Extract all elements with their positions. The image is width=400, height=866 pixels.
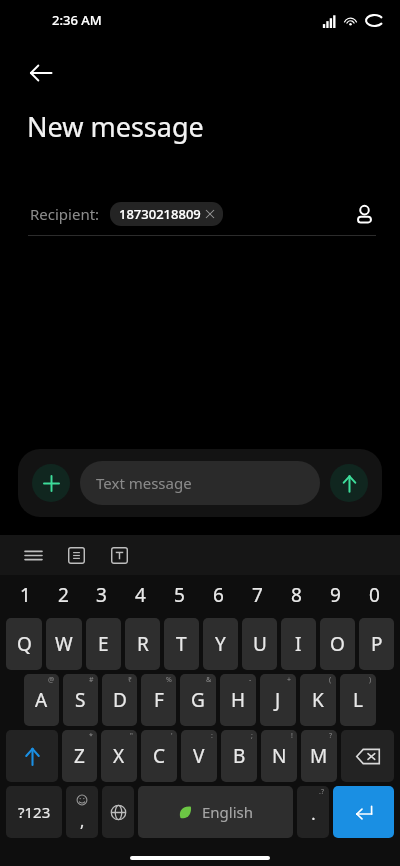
button[interactable]: T xyxy=(164,618,199,670)
button[interactable]: 6 xyxy=(199,575,238,615)
button[interactable]: Emoji and comma xyxy=(66,786,98,838)
button[interactable]: ?123 xyxy=(6,786,62,838)
staticText: Z xyxy=(74,743,85,769)
staticText: Q xyxy=(17,631,32,657)
staticText: 0 xyxy=(369,582,380,608)
button[interactable]: 0 xyxy=(355,575,394,615)
button[interactable]: R xyxy=(125,618,160,670)
staticText: @ xyxy=(48,675,55,685)
staticText: L xyxy=(353,687,363,713)
button[interactable]: ; xyxy=(221,730,257,782)
staticText: Y xyxy=(215,631,226,657)
staticText: .? xyxy=(319,787,324,797)
staticText: C xyxy=(153,743,166,769)
button[interactable]: Back xyxy=(18,50,64,96)
staticText: M xyxy=(310,743,328,769)
button[interactable]: Y xyxy=(203,618,238,670)
button[interactable]: @ xyxy=(24,674,59,726)
staticText: ? xyxy=(329,731,333,741)
staticText: U xyxy=(253,631,267,657)
staticText: K xyxy=(312,687,324,713)
button[interactable]: English xyxy=(138,786,293,838)
button[interactable]: Send xyxy=(330,464,368,502)
button[interactable]: 3 xyxy=(82,575,121,615)
staticText: 1 xyxy=(20,582,31,608)
staticText: I xyxy=(295,631,302,657)
button[interactable]: # xyxy=(63,674,98,726)
button[interactable]: 2 xyxy=(44,575,82,615)
button[interactable]: I xyxy=(281,618,316,670)
staticText: + xyxy=(287,675,292,685)
staticText: A xyxy=(35,687,48,713)
staticText: , xyxy=(80,810,85,832)
button[interactable]: 7 xyxy=(238,575,277,615)
staticText: ' xyxy=(171,731,173,741)
button[interactable]: Q xyxy=(6,618,42,670)
staticText: 3 xyxy=(96,582,107,608)
staticText: Recipient: xyxy=(30,204,100,224)
button[interactable]: ₹ xyxy=(102,674,137,726)
staticText: 7 xyxy=(252,582,263,608)
button[interactable]: - xyxy=(220,674,256,726)
staticText: T xyxy=(176,631,187,657)
button[interactable]: P xyxy=(359,618,394,670)
staticText: " xyxy=(130,731,133,741)
staticText: 8 xyxy=(291,582,302,608)
button[interactable]: Add attachment xyxy=(32,464,70,502)
button[interactable]: ) xyxy=(340,674,376,726)
staticText: & xyxy=(206,675,212,685)
button[interactable]: Text message xyxy=(80,461,320,505)
staticText: X xyxy=(113,743,125,769)
staticText: ; xyxy=(251,731,253,741)
button[interactable]: Text editing xyxy=(102,538,136,572)
staticText: Text message xyxy=(96,473,192,493)
staticText: H xyxy=(231,687,246,713)
staticText: New message xyxy=(27,108,204,145)
button[interactable]: Backspace xyxy=(341,730,394,782)
button[interactable]: Change language xyxy=(102,786,134,838)
button[interactable]: Choose contact xyxy=(344,194,384,234)
staticText: G xyxy=(191,687,205,713)
staticText: : xyxy=(211,731,213,741)
button[interactable]: E xyxy=(86,618,121,670)
button[interactable]: ( xyxy=(300,674,336,726)
staticText: J xyxy=(275,687,281,713)
staticText: ₹ xyxy=(128,675,133,685)
button[interactable]: U xyxy=(242,618,277,670)
staticText: . xyxy=(311,803,316,825)
staticText: 6 xyxy=(213,582,224,608)
staticText: English xyxy=(202,802,254,822)
button[interactable]: + xyxy=(260,674,296,726)
button[interactable]: 8 xyxy=(277,575,316,615)
button[interactable]: .? xyxy=(297,786,329,838)
staticText: ( xyxy=(329,675,332,685)
button[interactable]: 18730218809 xyxy=(110,202,223,226)
button[interactable]: 1 xyxy=(6,575,44,615)
staticText: R xyxy=(137,631,149,657)
staticText: 4 xyxy=(135,582,146,608)
button[interactable]: ! xyxy=(261,730,297,782)
staticText: 5 xyxy=(174,582,185,608)
button[interactable]: O xyxy=(320,618,355,670)
button[interactable]: Shift xyxy=(6,730,58,782)
button[interactable]: Menu xyxy=(16,538,50,572)
button[interactable]: 9 xyxy=(316,575,355,615)
button[interactable]: " xyxy=(101,730,137,782)
button[interactable]: ' xyxy=(141,730,177,782)
button[interactable]: 4 xyxy=(121,575,160,615)
staticText: B xyxy=(233,743,246,769)
staticText: - xyxy=(249,675,252,685)
button[interactable]: 5 xyxy=(160,575,199,615)
staticText: 2:36 AM xyxy=(52,11,102,29)
button[interactable]: * xyxy=(62,730,97,782)
button[interactable]: ? xyxy=(301,730,337,782)
button[interactable]: : xyxy=(181,730,217,782)
button[interactable]: % xyxy=(141,674,176,726)
staticText: S xyxy=(75,687,86,713)
staticText: D xyxy=(113,687,127,713)
staticText: N xyxy=(272,743,287,769)
button[interactable]: Enter xyxy=(333,786,394,838)
button[interactable]: & xyxy=(180,674,216,726)
button[interactable]: Clipboard xyxy=(59,538,93,572)
button[interactable]: W xyxy=(46,618,82,670)
